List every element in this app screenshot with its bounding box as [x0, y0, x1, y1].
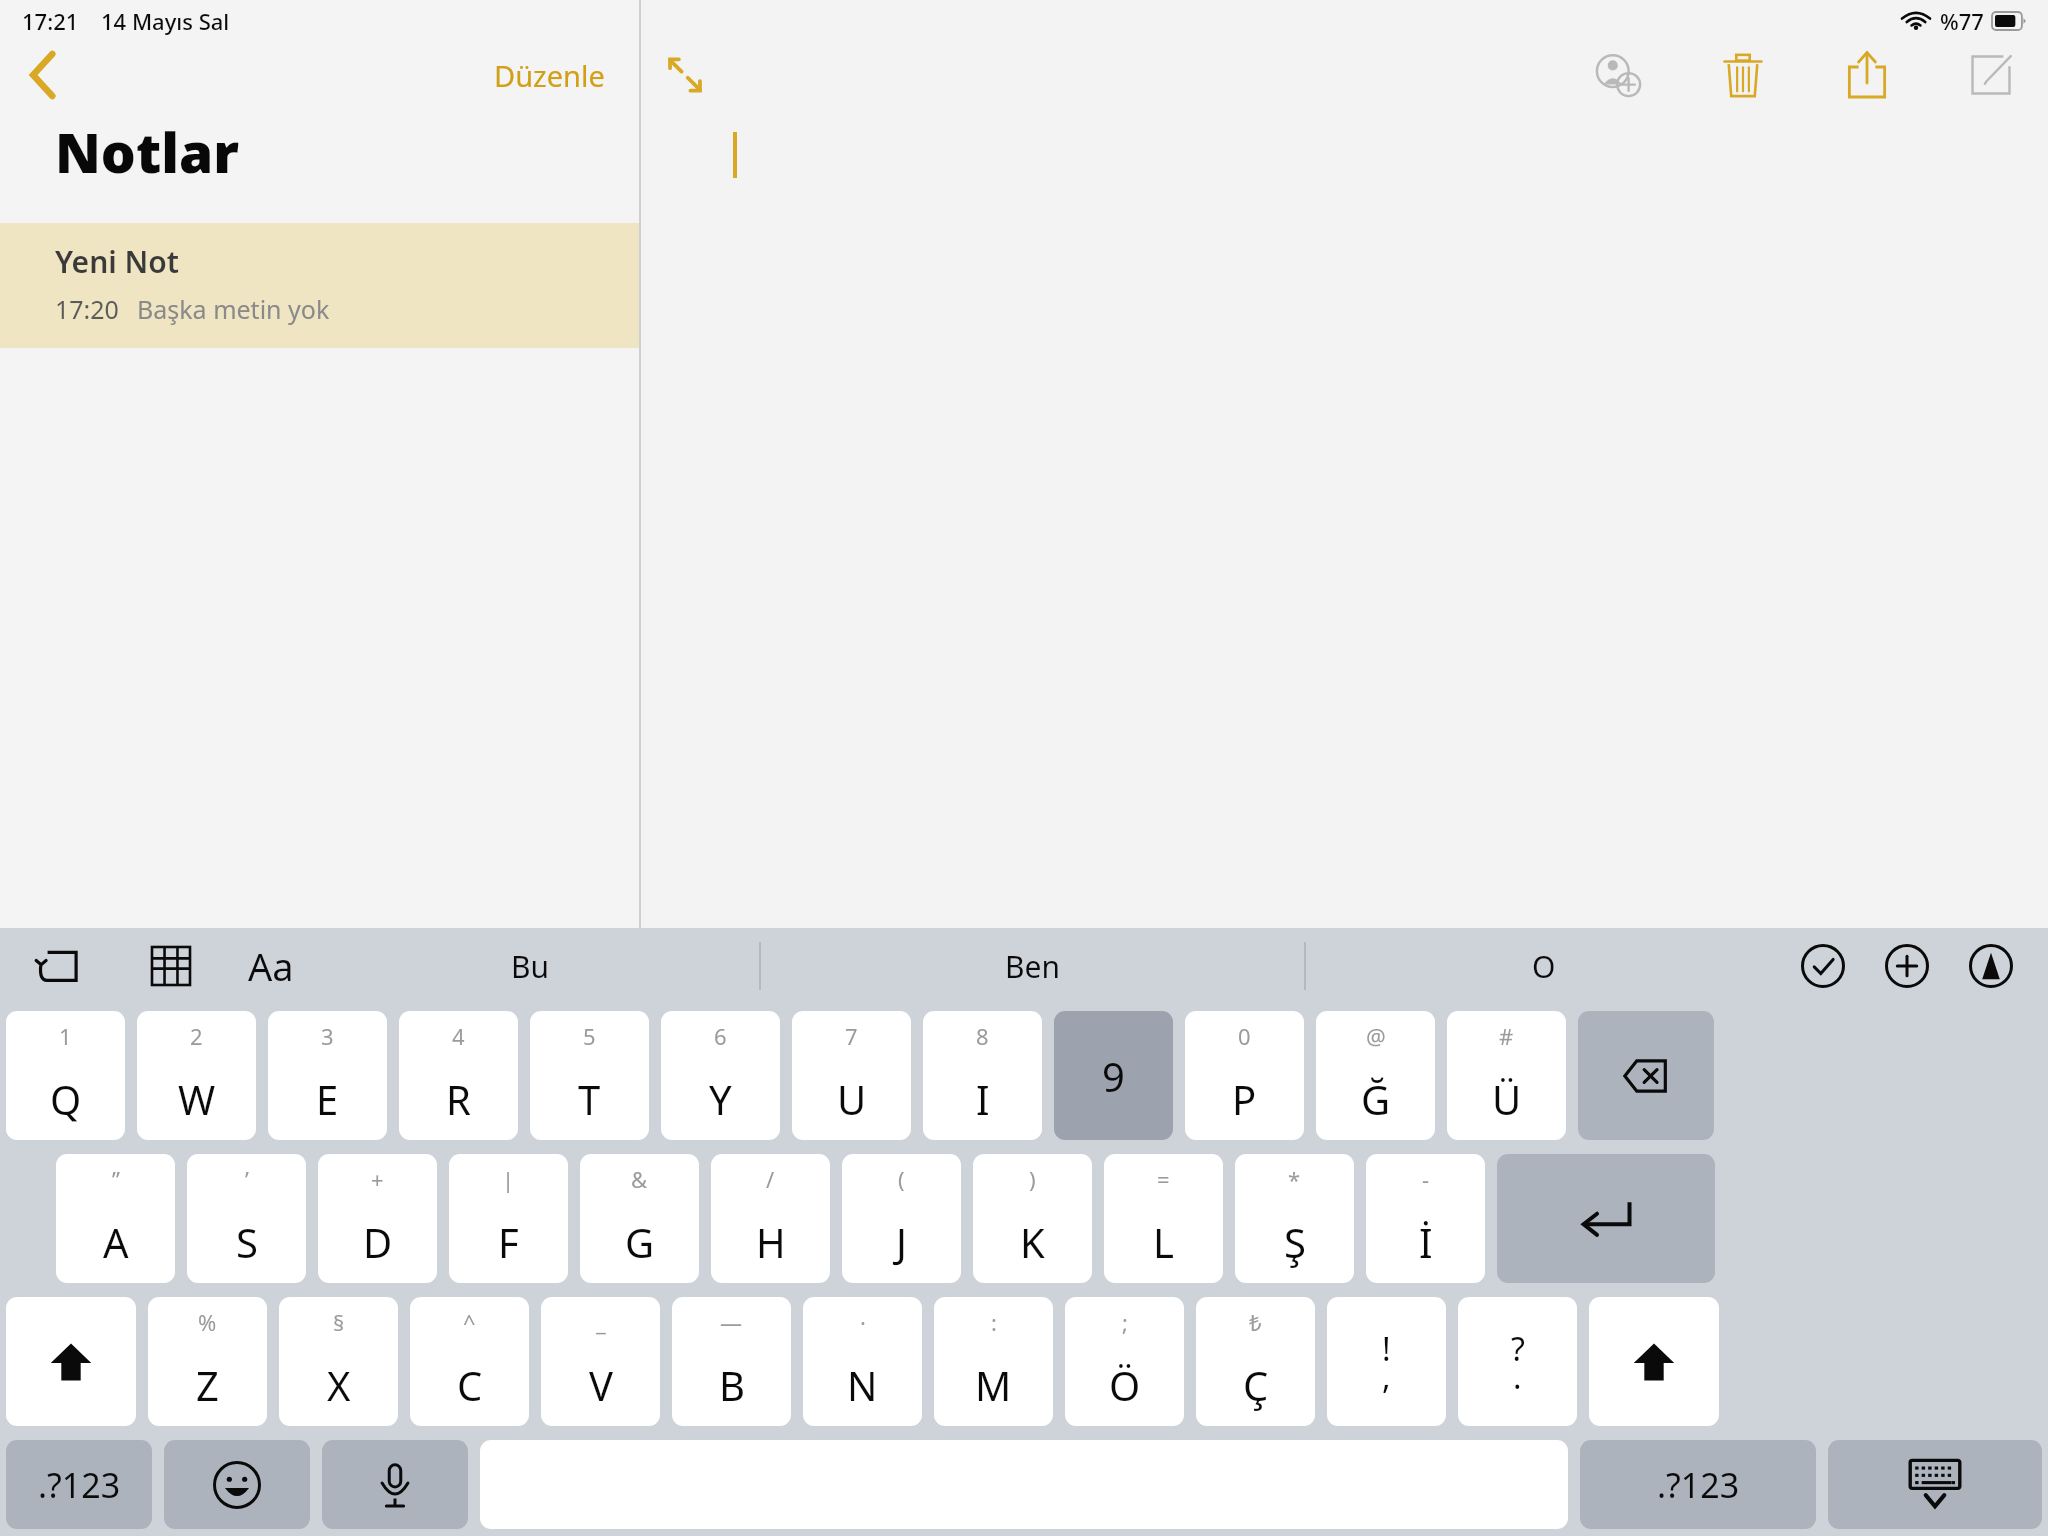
staticText: Ç [1243, 1358, 1269, 1412]
button[interactable]: ” [56, 1154, 175, 1283]
button[interactable]: & [580, 1154, 699, 1283]
button[interactable]: Sil [1706, 42, 1780, 108]
staticText: Bu [511, 946, 550, 987]
button[interactable]: Tablo [138, 933, 204, 999]
button[interactable]: Dikte [322, 1440, 468, 1529]
staticText: Q [50, 1072, 82, 1126]
button[interactable]: Klavyeyi kapat [1828, 1440, 2042, 1529]
button[interactable]: Bitti [1792, 935, 1854, 997]
staticText: Yeni Not [55, 241, 180, 282]
button[interactable]: % [148, 1297, 267, 1426]
button[interactable]: @ [1316, 1011, 1435, 1140]
staticText: 14 Mayıs Sal [101, 6, 230, 36]
button[interactable]: _ [541, 1297, 660, 1426]
staticText: Ş [1284, 1215, 1306, 1269]
button[interactable]: Bu [302, 928, 759, 1004]
button[interactable]: Büyük harf [6, 1297, 136, 1426]
button[interactable]: 0 [1185, 1011, 1304, 1140]
staticText: — [720, 1307, 743, 1337]
staticText: 7 [845, 1021, 858, 1051]
staticText: Ğ [1361, 1072, 1391, 1126]
staticText: 2 [190, 1021, 203, 1051]
button[interactable]: + [318, 1154, 437, 1283]
button[interactable]: 3 [268, 1011, 387, 1140]
button[interactable]: ₺ [1196, 1297, 1315, 1426]
staticText: C [457, 1358, 483, 1412]
staticText: R [446, 1072, 471, 1126]
staticText: 6 [714, 1021, 727, 1051]
staticText: B [719, 1358, 745, 1412]
button[interactable]: 7 [792, 1011, 911, 1140]
staticText: İ [1419, 1215, 1433, 1269]
staticText: 1 [59, 1021, 72, 1051]
staticText: %77 [1940, 6, 1984, 36]
staticText: ( [898, 1164, 905, 1194]
button[interactable]: 9 [1054, 1011, 1173, 1140]
button[interactable]: : [934, 1297, 1053, 1426]
button[interactable]: ^ [410, 1297, 529, 1426]
button[interactable]: 6 [661, 1011, 780, 1140]
staticText: 17:21 [22, 6, 79, 36]
staticText: - [1422, 1164, 1430, 1194]
button[interactable]: Yeni Not [0, 223, 639, 348]
button[interactable]: · [803, 1297, 922, 1426]
button[interactable]: ! [1327, 1297, 1446, 1426]
staticText: Ö [1109, 1358, 1141, 1412]
staticText: : [991, 1307, 997, 1337]
button[interactable]: Yeni not [1954, 42, 2028, 108]
button[interactable]: 4 [399, 1011, 518, 1140]
button[interactable]: Ben [761, 928, 1304, 1004]
button[interactable]: Emoji [164, 1440, 310, 1529]
staticText: ; [1122, 1307, 1128, 1337]
staticText: Başka metin yok [137, 292, 330, 326]
button[interactable]: Kişi ekle [1582, 42, 1656, 108]
button[interactable]: * [1235, 1154, 1354, 1283]
staticText: & [631, 1164, 648, 1194]
staticText: G [625, 1215, 655, 1269]
button[interactable]: Aa [240, 932, 302, 1000]
staticText: ₺ [1249, 1307, 1262, 1337]
button[interactable]: ( [842, 1154, 961, 1283]
button[interactable]: İşaretle [1960, 935, 2022, 997]
button[interactable]: | [449, 1154, 568, 1283]
staticText: Ben [1005, 946, 1060, 987]
button[interactable]: Tam ekran [655, 45, 715, 105]
button[interactable]: ? [1458, 1297, 1577, 1426]
button[interactable]: Paylaş [1830, 42, 1904, 108]
button[interactable]: = [1104, 1154, 1223, 1283]
staticText: | [502, 1164, 515, 1194]
staticText: # [1499, 1021, 1514, 1051]
button[interactable]: Ekle [1876, 935, 1938, 997]
button[interactable]: 2 [137, 1011, 256, 1140]
button[interactable]: .?123 [6, 1440, 152, 1529]
staticText: / [766, 1164, 775, 1194]
staticText: P [1232, 1072, 1257, 1126]
button[interactable]: Sil [1578, 1011, 1714, 1140]
button[interactable]: / [711, 1154, 830, 1283]
button[interactable]: O [1306, 928, 1782, 1004]
button[interactable]: ’ [187, 1154, 306, 1283]
button[interactable]: # [1447, 1011, 1566, 1140]
button[interactable]: Düzenle [486, 50, 613, 101]
staticText: J [896, 1215, 907, 1269]
button[interactable]: .?123 [1580, 1440, 1816, 1529]
button[interactable]: 8 [923, 1011, 1042, 1140]
staticText: * [1288, 1164, 1301, 1194]
staticText: M [975, 1358, 1012, 1412]
button[interactable]: 5 [530, 1011, 649, 1140]
button[interactable]: Geri [16, 47, 72, 103]
button[interactable]: § [279, 1297, 398, 1426]
button[interactable]: 1 [6, 1011, 125, 1140]
button[interactable]: — [672, 1297, 791, 1426]
staticText: U [837, 1072, 867, 1126]
button[interactable]: ) [973, 1154, 1092, 1283]
staticText: ? [1511, 1327, 1525, 1371]
button[interactable]: - [1366, 1154, 1485, 1283]
staticText: 0 [1238, 1021, 1251, 1051]
button[interactable]: ; [1065, 1297, 1184, 1426]
button[interactable]: Büyük harf [1589, 1297, 1719, 1426]
button[interactable]: Geri al [26, 933, 92, 999]
staticText: + [371, 1164, 384, 1194]
button[interactable]: Satır başı [1497, 1154, 1715, 1283]
